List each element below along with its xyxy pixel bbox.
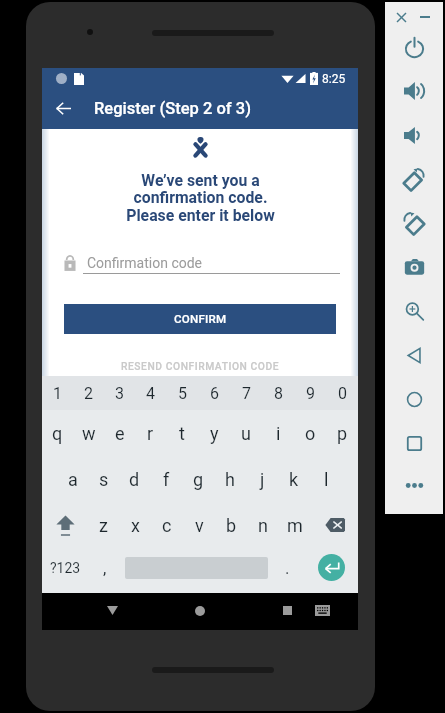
staticText: l: [324, 469, 329, 490]
button[interactable]: Home: [403, 388, 425, 410]
staticText: 3: [115, 384, 124, 403]
button[interactable]: d: [119, 456, 150, 502]
button[interactable]: 1: [42, 376, 73, 410]
staticText: CONFIRM: [174, 312, 227, 326]
staticText: i: [276, 423, 281, 444]
button[interactable]: Close: [393, 9, 409, 25]
button[interactable]: s: [88, 456, 119, 502]
button[interactable]: 2: [73, 376, 104, 410]
staticText: x: [131, 515, 140, 536]
button[interactable]: 5: [166, 376, 198, 410]
button[interactable]: Space: [121, 545, 271, 590]
staticText: z: [99, 515, 108, 536]
button[interactable]: Backspace: [311, 502, 358, 548]
button[interactable]: g: [182, 456, 214, 502]
button[interactable]: Power: [403, 36, 425, 58]
button[interactable]: k: [278, 456, 310, 502]
button[interactable]: 4: [135, 376, 166, 410]
staticText: 8: [274, 384, 283, 403]
staticText: d: [129, 469, 140, 490]
staticText: g: [193, 469, 204, 490]
staticText: n: [258, 515, 268, 536]
button[interactable]: e: [104, 410, 135, 456]
button[interactable]: Minimize: [417, 9, 433, 25]
button[interactable]: b: [215, 502, 247, 548]
button[interactable]: ,: [88, 545, 121, 590]
staticText: y: [210, 423, 219, 444]
staticText: a: [68, 469, 78, 490]
staticText: b: [226, 515, 237, 536]
button[interactable]: p: [326, 410, 358, 456]
staticText: q: [52, 423, 63, 444]
staticText: Confirmation code: [87, 255, 203, 271]
staticText: u: [241, 423, 251, 444]
staticText: j: [260, 469, 265, 490]
staticText: 4: [146, 384, 155, 403]
button[interactable]: y: [198, 410, 230, 456]
button[interactable]: h: [214, 456, 246, 502]
button[interactable]: 8: [262, 376, 294, 410]
button[interactable]: 0: [326, 376, 358, 410]
staticText: p: [337, 423, 348, 444]
staticText: k: [289, 469, 299, 490]
button[interactable]: RESEND CONFIRMATION CODE: [121, 360, 280, 372]
button[interactable]: j: [246, 456, 278, 502]
button[interactable]: Rotate right: [403, 212, 425, 234]
button[interactable]: Volume up: [403, 80, 425, 102]
button[interactable]: Back: [403, 344, 425, 366]
staticText: 6: [210, 384, 219, 403]
button[interactable]: .: [271, 545, 304, 590]
button[interactable]: n: [247, 502, 279, 548]
staticText: o: [305, 423, 316, 444]
button[interactable]: q: [42, 410, 73, 456]
button[interactable]: Switch keyboard: [306, 594, 338, 627]
staticText: Register (Step 2 of 3): [94, 99, 252, 118]
button[interactable]: Back: [45, 89, 81, 129]
staticText: m: [287, 515, 303, 536]
staticText: 1: [53, 384, 62, 403]
button[interactable]: Overview: [403, 432, 425, 454]
button[interactable]: 6: [198, 376, 230, 410]
staticText: f: [163, 469, 170, 490]
button[interactable]: Volume down: [403, 124, 425, 146]
button[interactable]: c: [151, 502, 183, 548]
button[interactable]: t: [166, 410, 198, 456]
button[interactable]: 9: [294, 376, 326, 410]
staticText: v: [195, 515, 204, 536]
button[interactable]: l: [310, 456, 342, 502]
button[interactable]: v: [183, 502, 215, 548]
staticText: ,: [103, 558, 107, 578]
button[interactable]: x: [119, 502, 151, 548]
button[interactable]: Enter: [304, 545, 358, 590]
staticText: 8:25: [322, 72, 346, 86]
button[interactable]: 7: [230, 376, 262, 410]
button[interactable]: m: [279, 502, 311, 548]
button[interactable]: Take screenshot: [403, 256, 425, 278]
button[interactable]: ?123: [42, 545, 88, 590]
staticText: w: [82, 423, 96, 444]
staticText: r: [147, 423, 154, 444]
button[interactable]: u: [230, 410, 262, 456]
button[interactable]: f: [150, 456, 182, 502]
button[interactable]: CONFIRM: [64, 304, 336, 334]
button[interactable]: More options: [403, 474, 425, 496]
button[interactable]: a: [57, 456, 88, 502]
button[interactable]: 3: [104, 376, 135, 410]
button[interactable]: o: [294, 410, 326, 456]
button[interactable]: Back: [96, 594, 128, 627]
staticText: e: [115, 423, 125, 444]
button[interactable]: i: [262, 410, 294, 456]
staticText: 9: [306, 384, 315, 403]
button[interactable]: w: [73, 410, 104, 456]
staticText: 5: [178, 384, 187, 403]
button[interactable]: Rotate left: [403, 168, 425, 190]
button[interactable]: Recents: [271, 594, 303, 627]
button[interactable]: r: [135, 410, 166, 456]
button[interactable]: Zoom: [403, 300, 425, 322]
staticText: ?123: [50, 560, 81, 576]
staticText: We’ve sent you a confirmation code. Plea…: [126, 171, 275, 225]
button[interactable]: Home: [184, 594, 216, 627]
staticText: 2: [84, 384, 93, 403]
button[interactable]: z: [88, 502, 119, 548]
button[interactable]: Shift: [42, 502, 88, 548]
